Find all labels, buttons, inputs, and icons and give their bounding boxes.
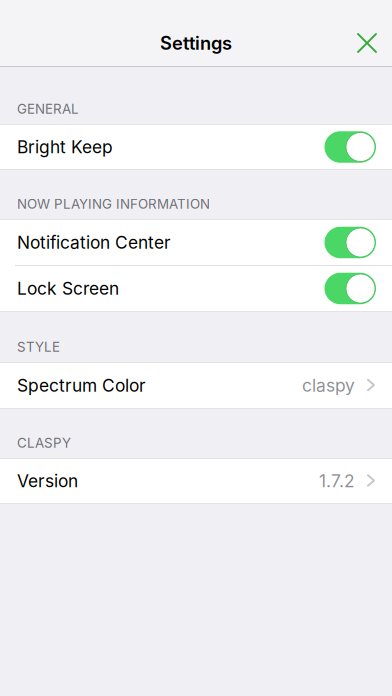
button[interactable]: On <box>0 125 392 169</box>
staticText: claspy <box>302 375 355 396</box>
staticText: Version <box>17 470 78 491</box>
button[interactable]: Version <box>0 459 392 503</box>
staticText: NOW PLAYING INFORMATION <box>17 196 210 212</box>
button[interactable]: On <box>0 266 392 311</box>
staticText: Settings <box>160 32 232 54</box>
staticText: STYLE <box>17 339 60 355</box>
staticText: Lock Screen <box>17 278 119 299</box>
staticText: 1.7.2 <box>319 470 355 491</box>
staticText: CLASPY <box>17 435 71 451</box>
button[interactable]: Spectrum Color <box>0 363 392 408</box>
staticText: Bright Keep <box>17 136 113 157</box>
button[interactable]: On <box>0 220 392 265</box>
staticText: Notification Center <box>17 232 171 253</box>
staticText: GENERAL <box>17 101 79 117</box>
button[interactable]: Close <box>344 24 392 62</box>
staticText: Spectrum Color <box>17 375 146 396</box>
